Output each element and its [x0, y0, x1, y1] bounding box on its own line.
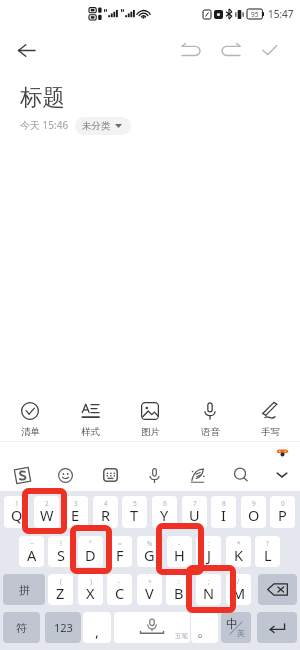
button[interactable]: 符 [3, 612, 40, 643]
staticText: 。 [197, 622, 212, 640]
staticText: D [85, 545, 96, 565]
staticText: 未分类 [82, 120, 111, 132]
button[interactable]: 5 [122, 496, 147, 528]
staticText: 五笔 [175, 632, 188, 640]
button[interactable]: 2 [34, 496, 59, 528]
staticText: ) [90, 577, 92, 586]
button[interactable]: 7 [182, 496, 207, 528]
button[interactable]: + [137, 574, 162, 605]
button[interactable]: 拼 [3, 574, 45, 605]
button[interactable]: = [107, 536, 132, 567]
staticText: W [40, 505, 54, 525]
button[interactable]: Enter [257, 612, 297, 643]
staticText: N [203, 583, 215, 603]
button[interactable]: Chinese English toggle [221, 612, 251, 643]
button[interactable]: ( [48, 574, 73, 605]
button[interactable]: : [166, 574, 191, 605]
button[interactable]: 语音 [184, 400, 236, 442]
staticText: % [147, 539, 153, 548]
button[interactable]: Search [225, 459, 257, 491]
staticText: + [148, 577, 152, 586]
button[interactable]: 图片 [124, 400, 176, 442]
staticText: R [101, 505, 111, 525]
button[interactable]: ° [78, 536, 103, 567]
button[interactable]: Space [114, 612, 190, 643]
staticText: T [130, 505, 139, 525]
button[interactable]: 。 [191, 612, 218, 643]
staticText: ? [266, 539, 269, 548]
staticText: V [145, 583, 154, 603]
staticText: = [118, 539, 122, 548]
staticText: ; [208, 577, 210, 586]
button[interactable]: Back [10, 34, 42, 66]
staticText: 符 [16, 621, 27, 635]
staticText: 中 [226, 616, 238, 631]
button[interactable]: / [226, 574, 251, 605]
button[interactable]: 123 [45, 612, 81, 643]
button[interactable]: Done [252, 33, 286, 67]
button[interactable]: 未分类 [75, 117, 131, 135]
staticText: 9 [252, 499, 256, 508]
button[interactable]: % [137, 536, 162, 567]
staticText: 今天 15:46 [20, 118, 69, 132]
staticText: 拼 [19, 583, 30, 597]
staticText: G [144, 545, 155, 565]
staticText: - [118, 577, 121, 586]
button[interactable]: , [83, 612, 111, 643]
staticText: 15:47 [268, 7, 294, 21]
staticText: Y [160, 505, 169, 525]
staticText: 95 [251, 10, 259, 19]
button[interactable]: Backspace [258, 574, 297, 605]
staticText: 8 [222, 499, 226, 508]
staticText: H [174, 545, 185, 565]
staticText: , [95, 621, 99, 641]
button[interactable]: ; [196, 574, 221, 605]
button[interactable]: 9 [241, 496, 266, 528]
staticText: M [232, 583, 246, 603]
button[interactable]: Keyboard [94, 459, 126, 491]
button[interactable]: 样式 [64, 400, 116, 442]
staticText: Q [11, 505, 23, 525]
staticText: L [264, 545, 272, 565]
button[interactable]: 6 [152, 496, 177, 528]
button[interactable]: Handwriting [181, 459, 213, 491]
staticText: ~ [30, 539, 34, 548]
button[interactable]: Sogou [6, 459, 38, 491]
staticText: U [189, 505, 200, 525]
staticText: ! [60, 539, 62, 548]
button[interactable]: 1 [4, 496, 29, 528]
button[interactable]: Emoji [49, 459, 81, 491]
button[interactable]: ? [255, 536, 280, 567]
staticText: A [27, 545, 37, 565]
button[interactable]: ~ [19, 536, 44, 567]
button[interactable]: - [167, 536, 192, 567]
button[interactable]: Redo [214, 33, 248, 67]
staticText: 2 [45, 499, 49, 508]
staticText: 手写 [261, 426, 280, 438]
staticText: 7 [193, 499, 197, 508]
staticText: 6 [163, 499, 167, 508]
button[interactable]: 清单 [4, 400, 56, 442]
button[interactable]: 0 [270, 496, 295, 528]
button[interactable]: Collapse [266, 459, 298, 491]
button[interactable]: 手写 [244, 400, 296, 442]
button[interactable]: 8 [211, 496, 236, 528]
staticText: - [178, 539, 181, 548]
staticText: C [115, 583, 125, 603]
button[interactable]: ) [78, 574, 103, 605]
button[interactable]: Voice [138, 459, 170, 491]
button[interactable]: - [107, 574, 132, 605]
button[interactable]: : [196, 536, 221, 567]
button[interactable]: ! [48, 536, 73, 567]
button[interactable]: 4 [93, 496, 118, 528]
staticText: Z [56, 583, 65, 603]
button[interactable]: Undo [174, 33, 208, 67]
staticText: F [116, 545, 124, 565]
staticText: P [278, 505, 287, 525]
button[interactable]: 3 [63, 496, 88, 528]
button[interactable]: * [226, 536, 251, 567]
staticText: 标题 [20, 83, 65, 111]
staticText: 0 [281, 499, 285, 508]
staticText: 4 [104, 499, 108, 508]
staticText: 5 [133, 499, 137, 508]
